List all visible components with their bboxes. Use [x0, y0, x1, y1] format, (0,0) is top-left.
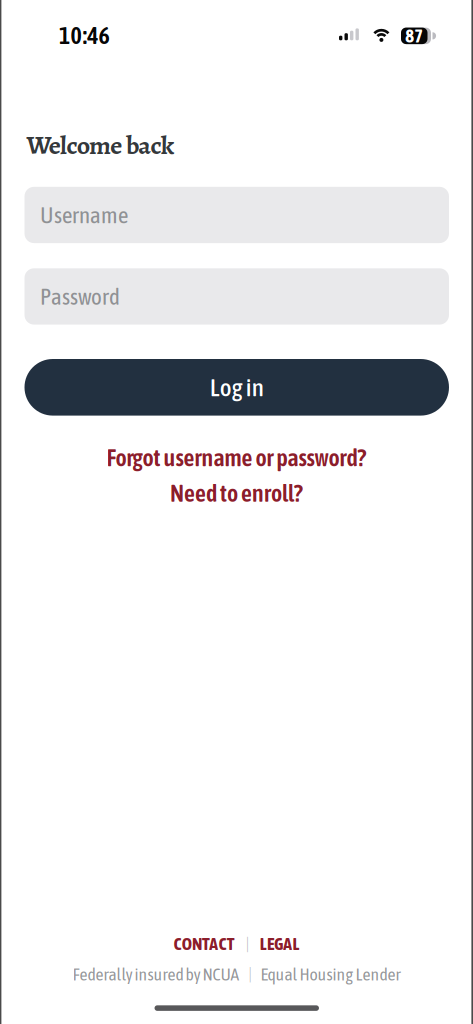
button[interactable]: Forgot username or password?	[106, 444, 366, 471]
button[interactable]: LEGAL	[260, 933, 299, 954]
staticText: 10:46	[59, 22, 110, 49]
staticText: Username	[40, 202, 128, 228]
staticText: 87	[405, 25, 423, 47]
staticText: Forgot username or password?	[106, 444, 366, 471]
staticText: Password	[40, 283, 120, 310]
button[interactable]: Password	[24, 268, 449, 325]
staticText: Welcome back	[26, 127, 175, 163]
button[interactable]: Need to enroll?	[170, 479, 303, 507]
staticText: CONTACT	[173, 933, 235, 954]
staticText: Equal Housing Lender	[260, 964, 400, 984]
staticText: LEGAL	[260, 933, 299, 954]
button[interactable]: Log in	[24, 359, 449, 416]
button[interactable]: CONTACT	[173, 933, 235, 954]
staticText: Log in	[210, 373, 264, 402]
staticText: Need to enroll?	[170, 479, 303, 507]
staticText: Federally insured by NCUA	[72, 964, 239, 984]
staticText: |	[248, 964, 251, 984]
button[interactable]: Username	[24, 187, 449, 243]
staticText: |	[246, 934, 249, 954]
